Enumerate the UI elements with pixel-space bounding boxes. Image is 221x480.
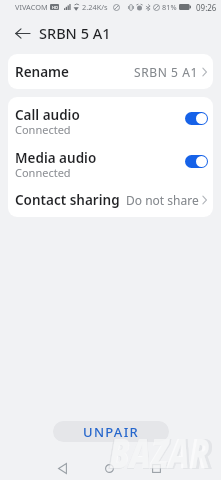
staticText: UNPAIR <box>83 423 140 441</box>
staticText: SRBN 5 A1 <box>134 64 199 80</box>
staticText: BAZAR <box>108 424 214 480</box>
button[interactable]: Home <box>97 457 122 479</box>
staticText: Media audio <box>15 149 97 167</box>
button[interactable]: Call audio <box>8 97 213 140</box>
button[interactable]: Contact sharing <box>8 183 213 217</box>
staticText: Do not share <box>126 192 199 208</box>
staticText: BAZAR <box>110 425 210 479</box>
button[interactable]: Toggle <box>185 112 208 125</box>
staticText: 2.24K/s <box>82 2 108 12</box>
button[interactable]: Media audio <box>8 140 213 183</box>
button[interactable]: Rename <box>8 54 213 89</box>
staticText: Connected <box>15 165 71 180</box>
staticText: 09:26 <box>196 2 217 13</box>
staticText: VIVACOM <box>15 2 48 12</box>
staticText: SRBN 5 A1 <box>39 23 111 43</box>
button[interactable]: Toggle <box>185 155 208 168</box>
button[interactable]: Back <box>50 457 75 479</box>
staticText: Rename <box>15 63 69 81</box>
button[interactable]: UNPAIR <box>53 421 169 442</box>
staticText: Connected <box>15 122 71 137</box>
staticText: HD <box>52 5 58 10</box>
button[interactable]: Recents <box>144 457 169 479</box>
staticText: Contact sharing <box>15 191 120 209</box>
staticText: 81% <box>162 2 177 12</box>
button[interactable]: Back <box>15 26 30 41</box>
staticText: Call audio <box>15 106 80 124</box>
